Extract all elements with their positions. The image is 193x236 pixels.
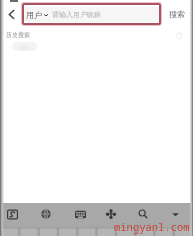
staticText: 请输入用户昵称 — [52, 10, 101, 19]
button[interactable]: Search — [132, 203, 154, 227]
button[interactable]: Back — [0, 0, 22, 28]
button[interactable]: Clear history — [173, 29, 185, 41]
staticText: 搜索 — [169, 9, 185, 19]
staticText: mingyanl.com — [114, 220, 190, 234]
button[interactable]: Sogou input — [1, 203, 23, 227]
button[interactable]: Keyboard layout — [69, 203, 91, 227]
button[interactable]: Language — [35, 203, 57, 227]
staticText: 用户 — [26, 10, 42, 20]
button[interactable]: 用户 — [22, 7, 161, 22]
button[interactable]: 测试 — [12, 42, 37, 51]
button[interactable]: Hide keyboard — [164, 203, 186, 227]
button[interactable]: Emoji — [100, 203, 122, 227]
staticText: 测试 — [20, 44, 30, 50]
button[interactable]: 搜索 — [161, 0, 193, 28]
staticText: 历史搜索 — [6, 31, 30, 39]
